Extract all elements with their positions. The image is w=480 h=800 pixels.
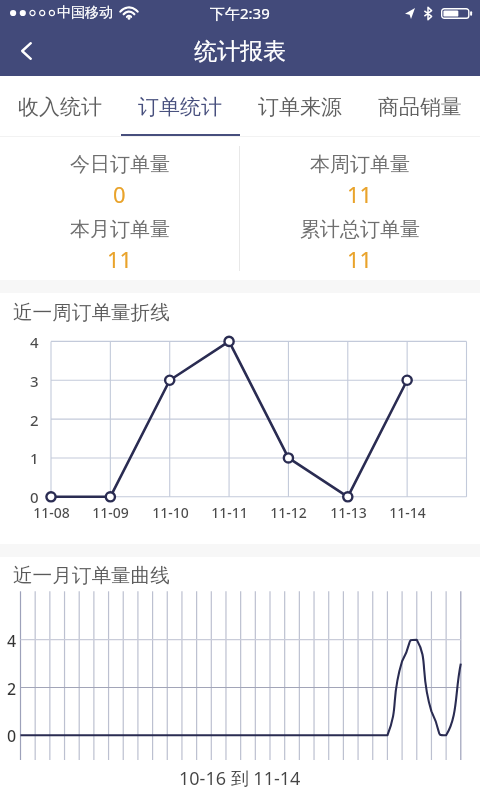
staticText: 0 <box>30 487 39 507</box>
button[interactable]: 收入统计 <box>0 76 120 137</box>
staticText: 11-11 <box>211 503 248 522</box>
staticText: 2 <box>7 678 17 700</box>
staticText: 近一月订单量曲线 <box>13 563 170 588</box>
staticText: 收入统计 <box>18 94 102 120</box>
staticText: 商品销量 <box>378 94 462 120</box>
staticText: 3 <box>30 371 39 391</box>
staticText: 订单来源 <box>258 94 342 120</box>
staticText: 订单统计 <box>138 94 222 120</box>
staticText: 11 <box>347 244 373 274</box>
button[interactable]: 商品销量 <box>360 76 480 137</box>
staticText: 11-08 <box>33 503 70 522</box>
staticText: 本周订单量 <box>310 152 410 177</box>
staticText: 本月订单量 <box>70 217 170 242</box>
staticText: 今日订单量 <box>70 152 170 177</box>
staticText: 近一周订单量折线 <box>13 300 170 325</box>
staticText: 11-09 <box>92 503 129 522</box>
staticText: 0 <box>7 725 17 747</box>
button[interactable]: 订单来源 <box>240 76 360 137</box>
staticText: 4 <box>30 332 39 352</box>
staticText: 1 <box>30 448 39 468</box>
button[interactable]: 订单统计 <box>120 76 240 137</box>
staticText: 中国移动 <box>57 4 113 22</box>
staticText: 累计总订单量 <box>300 217 420 242</box>
staticText: 11 <box>347 179 373 209</box>
staticText: 4 <box>7 630 17 652</box>
staticText: 0 <box>113 179 126 209</box>
staticText: 11 <box>107 244 133 274</box>
staticText: 11-12 <box>270 503 307 522</box>
staticText: 下午2:39 <box>210 3 270 23</box>
staticText: 11-10 <box>152 503 189 522</box>
button[interactable]: Back <box>0 26 52 76</box>
staticText: 10-16 到 11-14 <box>179 766 301 791</box>
staticText: 11-14 <box>389 503 426 522</box>
staticText: 11-13 <box>330 503 367 522</box>
staticText: 统计报表 <box>194 37 286 66</box>
staticText: 2 <box>30 410 39 430</box>
